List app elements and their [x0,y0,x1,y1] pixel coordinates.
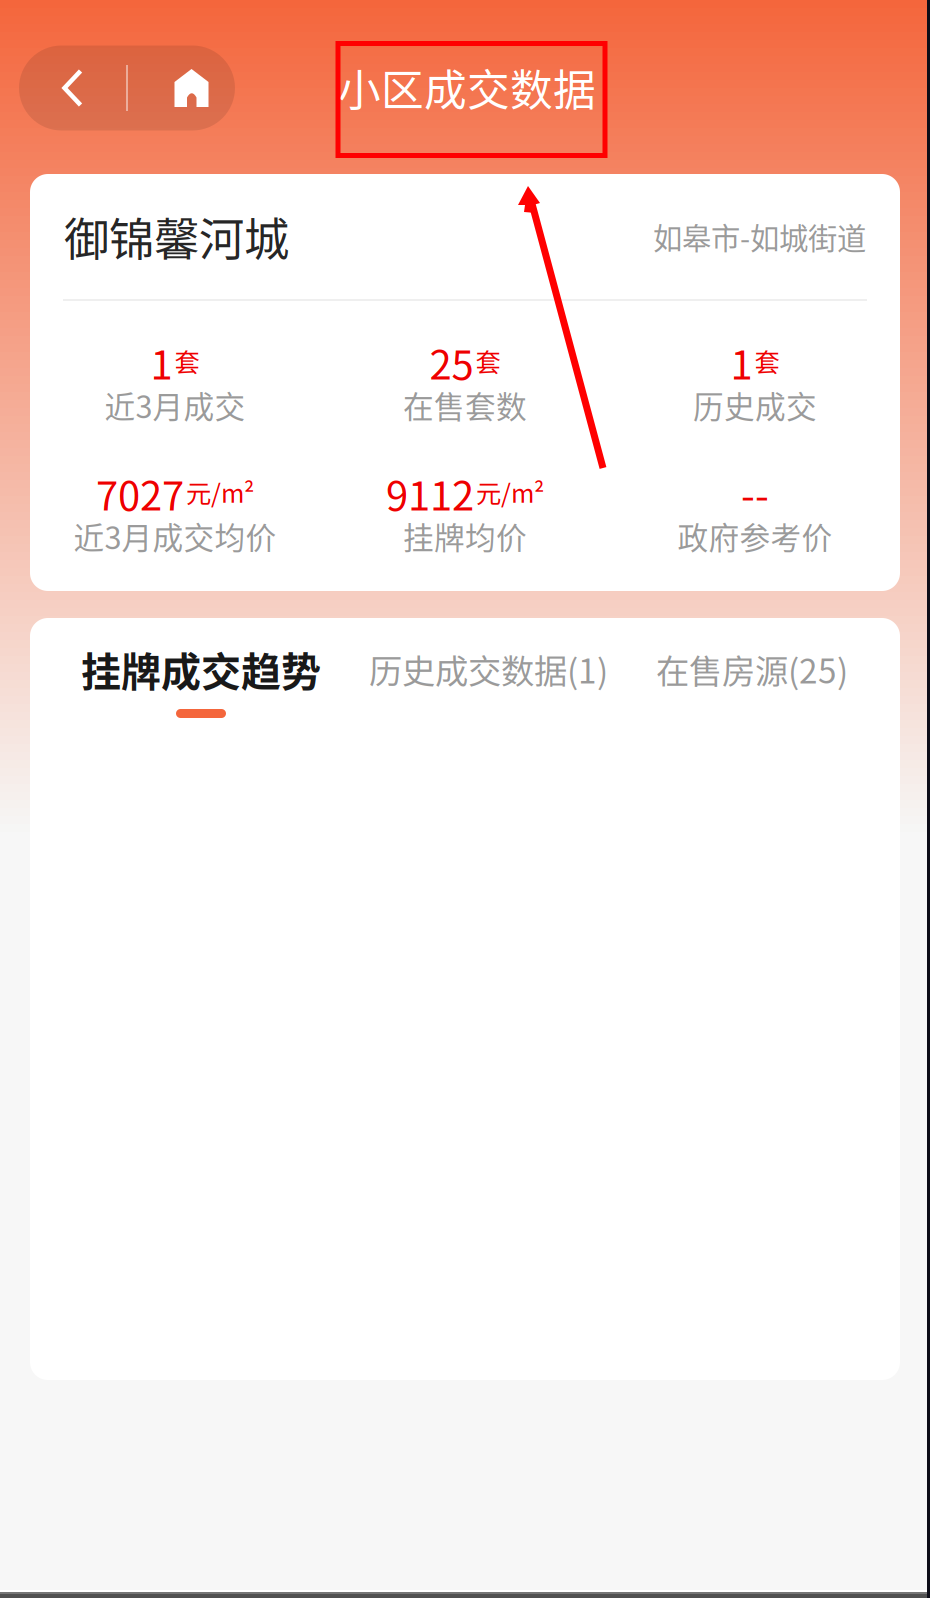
staticText: 元/m² [476,473,544,510]
staticText: -- [741,464,769,522]
staticText: 历史成交 [693,383,817,427]
staticText: 1 [730,333,752,391]
staticText: 挂牌均价 [403,514,527,558]
staticText: 小区成交数据 [338,56,596,118]
staticText: 1 [150,333,172,391]
staticText: 9112 [386,464,474,522]
staticText: 7027 [96,464,184,522]
staticText: 近3月成交 [104,383,245,427]
button[interactable]: 在售房源(25) [656,646,848,718]
staticText: 在售套数 [403,383,527,427]
button[interactable]: 历史成交数据(1) [369,646,608,718]
button[interactable]: Home [128,45,235,130]
staticText: 在售房源(25) [656,645,848,693]
staticText: 御锦馨河城 [64,204,289,269]
staticText: 挂牌成交趋势 [81,640,321,698]
staticText: 套 [174,342,199,379]
staticText: 近3月成交均价 [73,514,276,558]
staticText: 政府参考价 [677,514,832,558]
staticText: 套 [754,342,779,379]
staticText: 25 [429,333,473,391]
button[interactable]: 挂牌成交趋势 [81,646,321,718]
button[interactable]: Back [19,45,126,130]
staticText: 历史成交数据(1) [369,645,608,693]
staticText: 套 [475,342,500,379]
staticText: 元/m² [186,473,254,510]
staticText: 如皋市-如城街道 [653,215,866,258]
